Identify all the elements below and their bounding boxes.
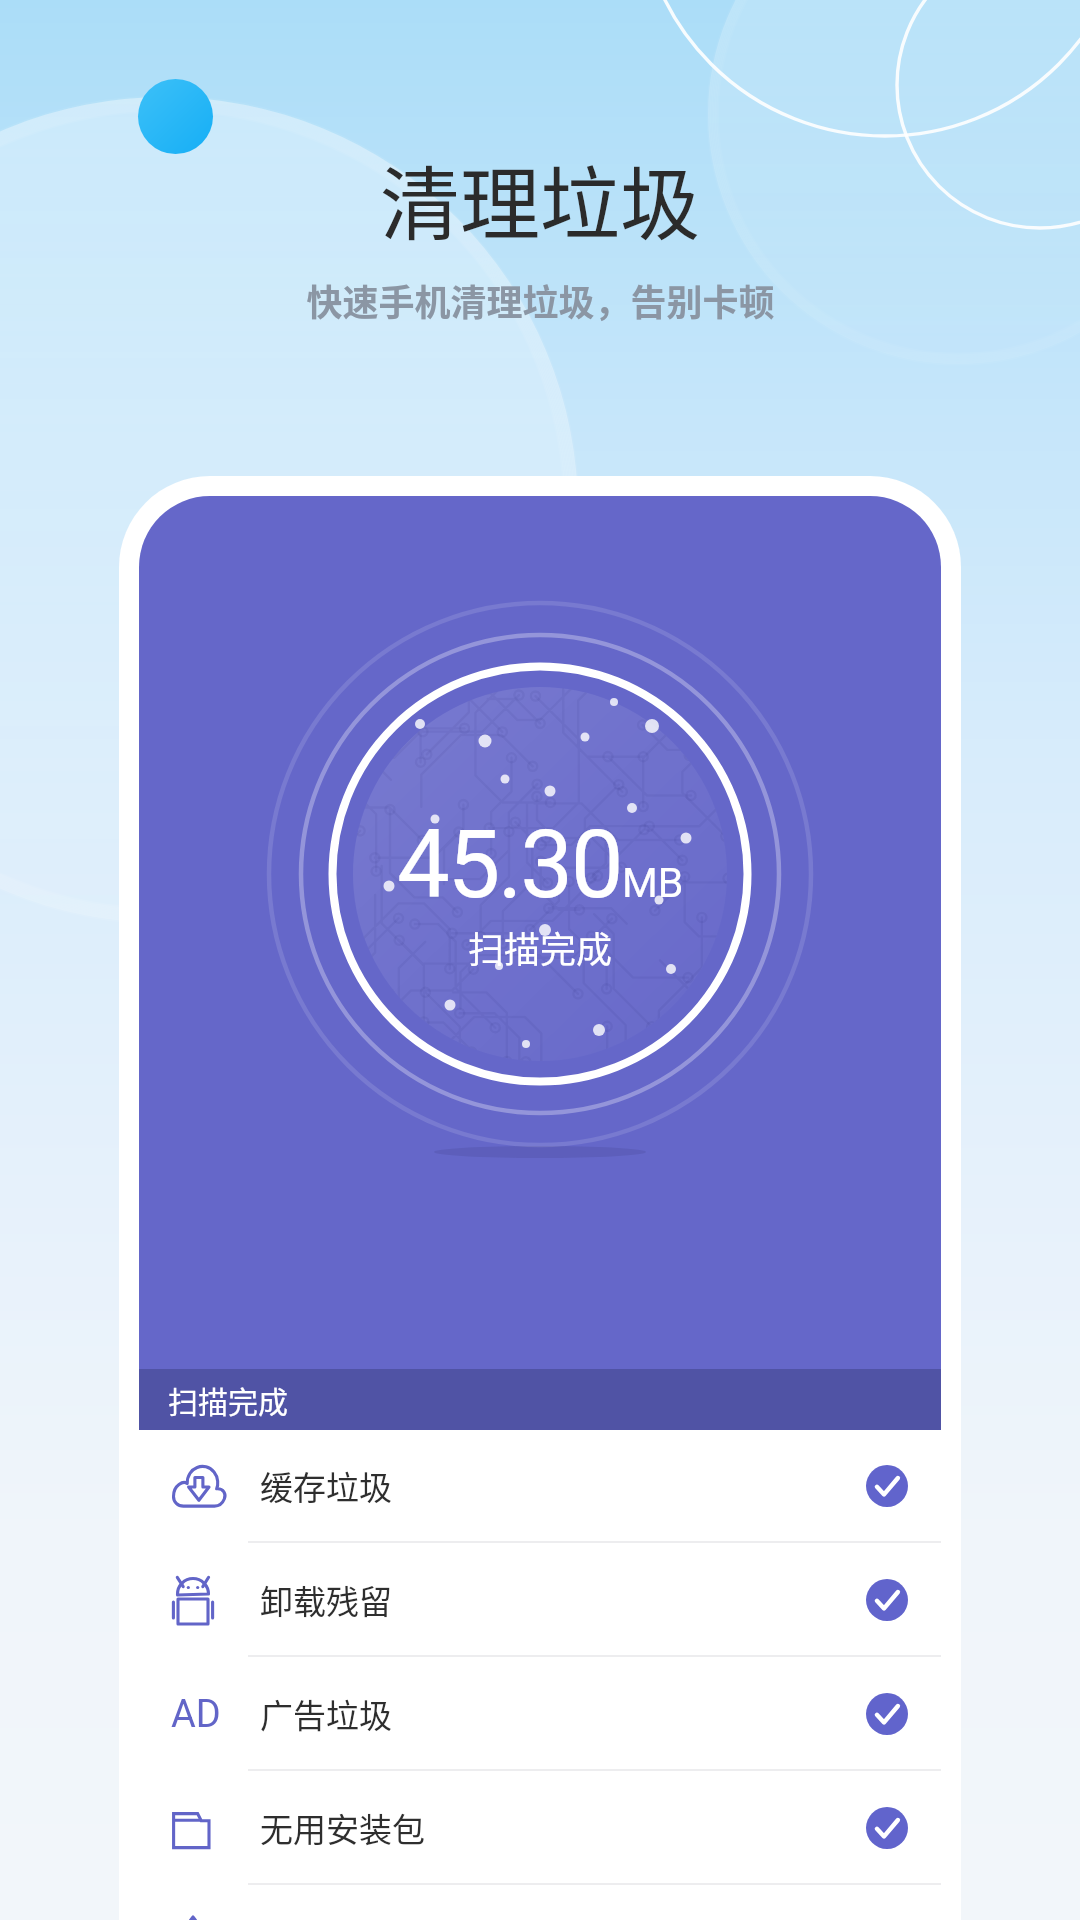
staticText: AD: [171, 1692, 221, 1737]
button[interactable]: 卸载残留: [119, 1543, 961, 1657]
staticText: 缓存垃圾: [260, 1462, 392, 1510]
button[interactable]: Selected: [866, 1579, 908, 1621]
staticText: 扫描完成: [468, 921, 613, 973]
staticText: 卸载残留: [260, 1576, 392, 1624]
staticText: MB: [622, 859, 684, 907]
staticText: 快速手机清理垃圾，告别卡顿: [306, 274, 775, 326]
staticText: 扫描完成: [168, 1378, 288, 1421]
button[interactable]: Selected: [866, 1693, 908, 1735]
button[interactable]: AD: [119, 1657, 961, 1771]
staticText: 广告垃圾: [260, 1690, 392, 1738]
staticText: 无用安装包: [260, 1804, 425, 1852]
staticText: 清理垃圾: [380, 140, 700, 256]
staticText: 45.30: [397, 810, 622, 920]
button[interactable]: 缓存垃圾: [119, 1429, 961, 1543]
button[interactable]: 内存加速: [119, 1885, 961, 1920]
button[interactable]: Selected: [866, 1807, 908, 1849]
button[interactable]: 无用安装包: [119, 1771, 961, 1885]
button[interactable]: Selected: [866, 1465, 908, 1507]
